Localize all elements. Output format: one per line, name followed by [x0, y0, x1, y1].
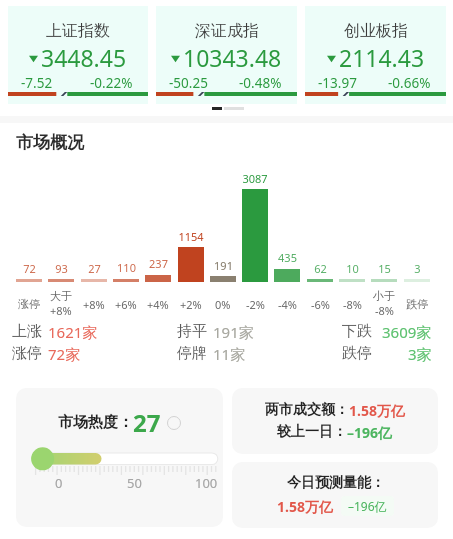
- staticText: 62: [314, 261, 327, 276]
- staticText: 11家: [213, 344, 246, 364]
- staticText: 191: [214, 258, 233, 273]
- staticText: 2114.43: [339, 42, 425, 73]
- staticText: 上涨: [12, 322, 42, 341]
- staticText: -2%: [246, 297, 265, 312]
- staticText: 涨停: [12, 344, 42, 363]
- staticText: 1154: [178, 229, 204, 244]
- staticText: -0.66%: [388, 74, 431, 92]
- staticText: 435: [278, 250, 297, 265]
- staticText: 3087: [242, 171, 268, 186]
- staticText: 3609家: [382, 322, 432, 342]
- staticText: -0.22%: [90, 74, 133, 92]
- staticText: +2%: [180, 297, 202, 312]
- staticText: 深证成指: [195, 21, 259, 41]
- staticText: 72家: [48, 344, 81, 364]
- staticText: 两市成交额：: [265, 401, 349, 419]
- button[interactable]: 市场热度：: [16, 388, 223, 527]
- staticText: -13.97: [318, 74, 357, 92]
- staticText: 10: [346, 261, 359, 276]
- staticText: 237: [149, 256, 168, 271]
- staticText: -7.52: [21, 74, 53, 92]
- staticText: 停牌: [177, 344, 207, 363]
- staticText: -8%: [343, 297, 362, 312]
- staticText: 0: [55, 474, 63, 492]
- staticText: -50.25: [169, 74, 208, 92]
- staticText: –196亿: [347, 423, 393, 442]
- staticText: 3448.45: [41, 42, 127, 73]
- staticText: 72: [23, 261, 36, 276]
- staticText: 15: [378, 261, 391, 276]
- button[interactable]: 上证指数: [8, 6, 148, 104]
- staticText: 跌停: [406, 297, 428, 311]
- staticText: +4%: [147, 297, 169, 312]
- staticText: 191家: [213, 322, 254, 342]
- staticText: -8%: [375, 303, 394, 318]
- staticText: 今日预测量能：: [287, 474, 385, 492]
- button[interactable]: 创业板指: [305, 6, 446, 104]
- button[interactable]: 今日预测量能：: [232, 462, 438, 528]
- staticText: 93: [55, 261, 68, 276]
- button[interactable]: 市场热度说明: [167, 416, 181, 430]
- staticText: -6%: [311, 297, 330, 312]
- staticText: -0.48%: [239, 74, 282, 92]
- staticText: 1.58万亿: [349, 401, 405, 420]
- staticText: 3: [414, 261, 421, 276]
- staticText: +8%: [83, 297, 105, 312]
- staticText: 创业板指: [344, 21, 408, 41]
- staticText: 3家: [408, 344, 432, 364]
- button[interactable]: 两市成交额：: [232, 388, 438, 454]
- staticText: 小于: [373, 289, 395, 303]
- staticText: +8%: [50, 303, 72, 318]
- staticText: 上证指数: [46, 21, 110, 41]
- staticText: –196亿: [348, 498, 387, 514]
- staticText: 50: [127, 474, 142, 492]
- staticText: 大于: [50, 289, 72, 303]
- staticText: 市场概况: [16, 132, 84, 153]
- staticText: 110: [117, 260, 136, 275]
- staticText: 1621家: [48, 322, 98, 342]
- staticText: 27: [133, 406, 161, 439]
- staticText: 100: [195, 474, 218, 492]
- staticText: 市场热度：: [58, 413, 133, 432]
- staticText: 跌停: [342, 344, 372, 363]
- staticText: 0%: [215, 297, 231, 312]
- staticText: 27: [88, 261, 101, 276]
- staticText: 较上一日：: [277, 423, 347, 441]
- staticText: 持平: [177, 322, 207, 341]
- staticText: 下跌: [342, 322, 372, 341]
- staticText: 10343.48: [183, 42, 282, 73]
- staticText: +6%: [115, 297, 137, 312]
- staticText: 1.58万亿: [277, 497, 333, 516]
- staticText: 涨停: [18, 297, 40, 311]
- button[interactable]: 深证成指: [156, 6, 297, 104]
- staticText: -4%: [278, 297, 297, 312]
